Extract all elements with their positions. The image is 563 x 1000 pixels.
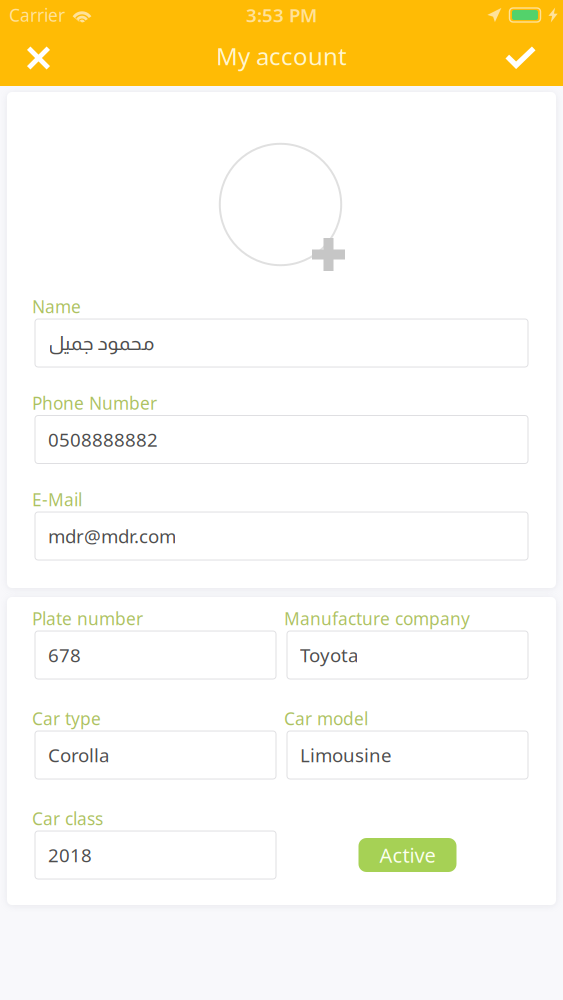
staticText: Phone Number: [32, 391, 157, 414]
button[interactable]: mdr@mdr.com: [35, 512, 528, 560]
staticText: Toyota: [300, 643, 358, 667]
staticText: Active: [379, 842, 435, 868]
button[interactable]: 0508888882: [35, 415, 528, 463]
button[interactable]: 2018: [35, 831, 276, 879]
staticText: 2018: [48, 843, 92, 867]
staticText: Carrier: [9, 3, 65, 26]
button[interactable]: Add photo: [219, 143, 344, 271]
staticText: Name: [32, 295, 81, 318]
button[interactable]: Toyota: [287, 631, 528, 679]
button[interactable]: Active: [358, 838, 456, 872]
button[interactable]: محمود جميل: [35, 319, 528, 367]
staticText: 3:53 PM: [246, 3, 317, 27]
button[interactable]: Close: [0, 30, 77, 86]
staticText: My account: [216, 40, 347, 72]
staticText: Limousine: [300, 743, 392, 767]
staticText: mdr@mdr.com: [48, 524, 176, 548]
staticText: Plate number: [32, 607, 143, 630]
button[interactable]: Limousine: [287, 731, 528, 779]
staticText: Corolla: [48, 743, 109, 767]
staticText: Manufacture company: [284, 607, 470, 630]
button[interactable]: 678: [35, 631, 276, 679]
staticText: محمود جميل: [48, 332, 154, 354]
staticText: 678: [48, 643, 81, 667]
staticText: E-Mail: [32, 488, 82, 511]
staticText: Car type: [32, 707, 101, 730]
staticText: 0508888882: [48, 427, 158, 452]
button[interactable]: Corolla: [35, 731, 276, 779]
staticText: Car model: [284, 707, 368, 730]
button[interactable]: Save: [478, 30, 563, 86]
staticText: Car class: [32, 807, 103, 830]
